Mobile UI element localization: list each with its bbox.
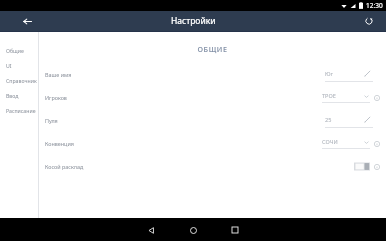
button[interactable]: Обновить	[360, 12, 378, 30]
button[interactable]: Общие	[0, 43, 38, 58]
staticText: Юг	[325, 70, 334, 78]
button[interactable]: Выбрать	[362, 92, 370, 100]
button[interactable]: Изменить	[362, 68, 373, 79]
staticText: Настройки	[171, 15, 216, 27]
staticText: Ваше имя	[45, 71, 72, 78]
staticText: Косой расклад	[45, 163, 84, 170]
staticText: 12:30	[366, 1, 383, 10]
button[interactable]: Выбрать	[362, 138, 370, 146]
button[interactable]: Косой расклад	[39, 155, 386, 178]
staticText: Расписание	[6, 107, 36, 114]
button[interactable]: Пуля	[39, 109, 386, 132]
staticText: Игроков	[45, 94, 67, 101]
button[interactable]: Информация	[372, 93, 382, 103]
staticText: 25	[325, 116, 332, 124]
staticText: ОБЩИЕ	[39, 44, 386, 54]
button[interactable]: Назад	[140, 219, 162, 241]
button[interactable]: Расписание	[0, 103, 38, 118]
staticText: Ввод	[6, 92, 19, 99]
button[interactable]: Конвенция	[39, 132, 386, 155]
staticText: Справочник	[6, 77, 37, 84]
button[interactable]: Изменить	[362, 114, 373, 125]
button[interactable]: Справочник	[0, 73, 38, 88]
staticText: Общие	[6, 47, 24, 54]
button[interactable]: Домой	[182, 219, 204, 241]
button[interactable]: Игроков	[39, 86, 386, 109]
button[interactable]: Ввод	[0, 88, 38, 103]
button[interactable]: Назад	[18, 12, 36, 30]
button[interactable]: UI	[0, 58, 38, 73]
button[interactable]: Информация	[372, 139, 382, 149]
button[interactable]: Информация	[372, 162, 382, 172]
button[interactable]: Ваше имя	[39, 63, 386, 86]
button[interactable]: Косой расклад	[354, 162, 370, 171]
staticText: ТРОЕ	[322, 92, 336, 100]
staticText: UI	[6, 62, 12, 69]
staticText: Пуля	[45, 117, 58, 124]
staticText: Конвенция	[45, 140, 74, 147]
button[interactable]: Последние приложения	[224, 219, 246, 241]
staticText: СОЧИ	[322, 138, 338, 146]
